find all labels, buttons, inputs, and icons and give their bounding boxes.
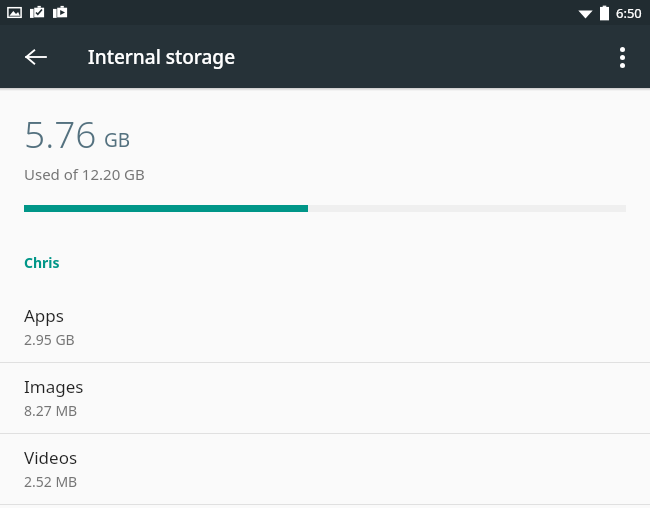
staticText: Used of 12.20 GB (24, 164, 145, 184)
button[interactable]: Images (0, 363, 650, 433)
button[interactable]: Apps (0, 292, 650, 362)
button[interactable]: Back (12, 33, 60, 81)
button[interactable]: Videos (0, 434, 650, 504)
staticText: 2.52 MB (24, 472, 78, 491)
staticText: 8.27 MB (24, 401, 78, 420)
staticText: Videos (24, 446, 78, 469)
staticText: GB (104, 127, 131, 153)
staticText: 5.76 (24, 108, 97, 158)
staticText: Chris (24, 253, 60, 272)
staticText: Images (24, 375, 84, 398)
staticText: 2.95 GB (24, 330, 75, 349)
staticText: 6:50 (616, 4, 642, 22)
button[interactable]: More options (600, 35, 644, 79)
staticText: Internal storage (88, 44, 236, 70)
staticText: Apps (24, 304, 64, 327)
